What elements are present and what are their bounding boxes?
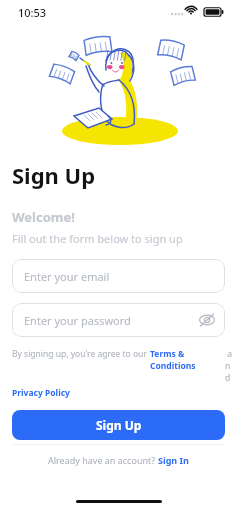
button[interactable]: Enter your password bbox=[12, 303, 225, 337]
staticText: Sign Up bbox=[96, 417, 142, 433]
staticText: 10:53 bbox=[18, 5, 47, 20]
button[interactable]: Privacy Policy bbox=[12, 387, 70, 399]
staticText: Enter your email bbox=[24, 269, 110, 284]
button[interactable]: Enter your email bbox=[12, 259, 225, 293]
staticText: By signing up, you're agree to our bbox=[12, 348, 150, 360]
staticText: Fill out the form below to sign up bbox=[12, 231, 183, 246]
staticText: Enter your password bbox=[24, 313, 131, 328]
button[interactable]: Show password bbox=[198, 311, 216, 329]
staticText: Sign Up bbox=[12, 160, 96, 190]
staticText: Welcome! bbox=[12, 208, 75, 226]
button[interactable]: Sign In bbox=[158, 454, 189, 466]
button[interactable]: Sign Up bbox=[12, 410, 225, 440]
button[interactable]: Terms & Conditions bbox=[150, 348, 225, 372]
staticText: Already have an account? bbox=[48, 454, 158, 466]
